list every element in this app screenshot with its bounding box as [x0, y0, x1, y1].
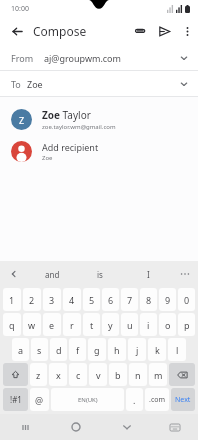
staticText: .com — [149, 395, 166, 405]
button[interactable]: 0 — [178, 288, 195, 311]
button[interactable]: s — [31, 338, 48, 361]
button[interactable]: Add recipient — [0, 135, 198, 167]
staticText: x — [56, 369, 61, 381]
staticText: 9 — [165, 294, 171, 306]
button[interactable]: EN(UK) — [51, 388, 124, 411]
button[interactable]: 1 — [3, 288, 21, 311]
button[interactable]: Attach — [128, 19, 152, 43]
button[interactable]: j — [128, 338, 146, 361]
button[interactable]: r — [63, 313, 81, 336]
button[interactable]: v — [89, 363, 107, 386]
staticText: !#1 — [10, 394, 22, 405]
staticText: . — [133, 394, 136, 406]
button[interactable]: Z — [0, 103, 198, 135]
button[interactable]: i — [140, 313, 157, 336]
button[interactable]: Send — [152, 19, 176, 43]
button[interactable]: f — [69, 338, 86, 361]
button[interactable]: Home — [50, 414, 101, 440]
staticText: n — [135, 369, 141, 381]
button[interactable]: Expand From — [174, 48, 194, 68]
button[interactable]: w — [23, 313, 41, 336]
staticText: j — [136, 344, 139, 356]
button[interactable]: h — [108, 338, 126, 361]
button[interactable]: p — [178, 313, 195, 336]
button[interactable]: Change keyboard — [152, 414, 198, 440]
staticText: 10:00 — [11, 4, 29, 14]
staticText: To — [11, 78, 21, 90]
button[interactable]: !#1 — [3, 388, 28, 411]
staticText: a — [18, 344, 24, 356]
button[interactable]: . — [126, 388, 143, 411]
staticText: w — [28, 319, 36, 331]
button[interactable]: l — [168, 338, 186, 361]
button[interactable]: and — [28, 261, 76, 287]
button[interactable]: Backspace — [169, 363, 195, 386]
button[interactable]: q — [3, 313, 21, 336]
button[interactable]: 6 — [102, 288, 119, 311]
button[interactable]: u — [121, 313, 138, 336]
button[interactable]: k — [148, 338, 166, 361]
button[interactable]: More options — [176, 20, 198, 42]
staticText: i — [147, 319, 150, 331]
staticText: o — [165, 319, 171, 331]
button[interactable]: 5 — [83, 288, 100, 311]
button[interactable]: 7 — [121, 288, 138, 311]
staticText: m — [154, 369, 163, 381]
staticText: zoe.taylor.wm@gmail.com — [42, 123, 116, 131]
staticText: @ — [35, 394, 44, 406]
button[interactable]: d — [50, 338, 67, 361]
staticText: 8 — [146, 294, 152, 306]
button[interactable]: 2 — [23, 288, 41, 311]
button[interactable]: I — [124, 261, 172, 287]
button[interactable]: y — [102, 313, 119, 336]
staticText: Zoe — [27, 78, 174, 90]
staticText: s — [37, 344, 42, 356]
staticText: is — [97, 269, 103, 280]
staticText: q — [9, 319, 15, 331]
button[interactable]: x — [49, 363, 67, 386]
button[interactable]: @ — [30, 388, 49, 411]
staticText: c — [76, 369, 81, 381]
button[interactable]: Back — [6, 20, 28, 42]
button[interactable]: Expand To — [174, 74, 194, 94]
button[interactable]: g — [88, 338, 106, 361]
button[interactable]: m — [149, 363, 167, 386]
button[interactable]: a — [12, 338, 29, 361]
button[interactable]: 3 — [43, 288, 61, 311]
staticText: p — [184, 319, 190, 331]
button[interactable]: From — [0, 45, 198, 70]
button[interactable]: 8 — [140, 288, 157, 311]
button[interactable]: c — [69, 363, 87, 386]
staticText: aj@groupwm.com — [44, 52, 174, 64]
staticText: EN(UK) — [78, 396, 98, 404]
button[interactable]: More suggestions — [172, 261, 198, 287]
staticText: b — [115, 369, 121, 381]
button[interactable]: Shift — [3, 363, 28, 386]
staticText: 2 — [29, 294, 35, 306]
button[interactable]: Recents — [0, 414, 50, 440]
button[interactable]: Hide keyboard — [101, 414, 152, 440]
staticText: d — [56, 344, 62, 356]
button[interactable]: Next — [171, 388, 195, 411]
button[interactable]: Previous suggestions — [0, 261, 28, 287]
button[interactable]: 9 — [159, 288, 176, 311]
button[interactable]: b — [109, 363, 127, 386]
staticText: h — [114, 344, 120, 356]
button[interactable]: z — [30, 363, 47, 386]
button[interactable]: o — [159, 313, 176, 336]
staticText: r — [70, 319, 74, 331]
button[interactable]: e — [43, 313, 61, 336]
staticText: f — [76, 344, 80, 356]
button[interactable]: 4 — [63, 288, 81, 311]
button[interactable]: t — [83, 313, 100, 336]
staticText: Next — [175, 395, 191, 405]
staticText: Compose — [33, 23, 87, 39]
staticText: 0 — [184, 294, 190, 306]
button[interactable]: To — [0, 71, 198, 96]
staticText: From — [11, 52, 34, 64]
button[interactable]: is — [76, 261, 124, 287]
staticText: v — [96, 369, 101, 381]
button[interactable]: .com — [145, 388, 169, 411]
staticText: Zoe — [42, 154, 53, 162]
button[interactable]: n — [129, 363, 147, 386]
